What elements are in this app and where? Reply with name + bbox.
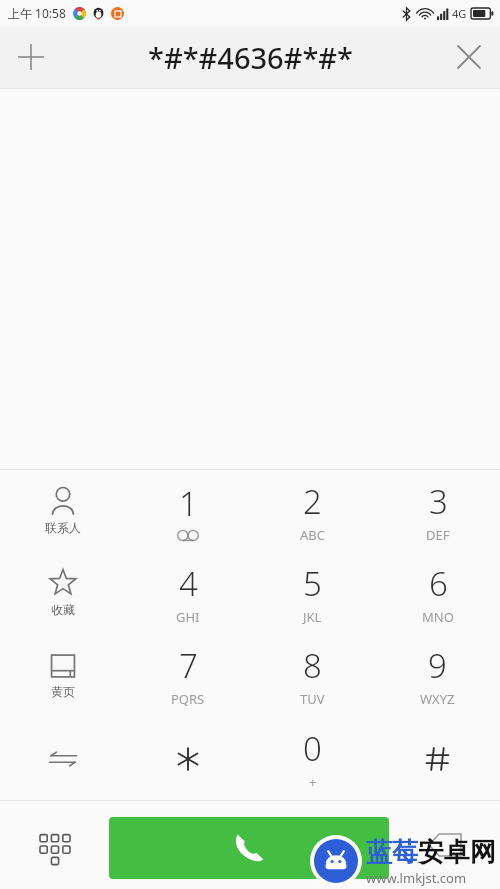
staticText: DEF	[426, 526, 450, 544]
staticText: 1	[179, 481, 198, 526]
staticText: 5	[303, 561, 322, 606]
button[interactable]: Delete	[390, 800, 500, 889]
button[interactable]: Favorites	[0, 552, 125, 634]
staticText: 4	[179, 561, 198, 606]
staticText: JKL	[303, 608, 322, 626]
staticText: 3	[429, 479, 448, 524]
staticText: *#*#4636#*#*	[148, 38, 353, 77]
button[interactable]: Switch	[0, 717, 125, 800]
button[interactable]: Add contact	[0, 26, 62, 88]
staticText: 联系人	[45, 520, 81, 535]
staticText: www.lmkjst.com	[366, 869, 467, 887]
staticText: 收藏	[51, 602, 75, 617]
staticText: 8	[303, 643, 322, 688]
staticText: 9	[428, 643, 447, 688]
staticText: 安卓网	[418, 836, 496, 869]
staticText: 4G	[452, 6, 467, 21]
staticText: PQRS	[171, 690, 205, 708]
button[interactable]: Contacts	[0, 470, 125, 552]
button[interactable]: 4	[125, 552, 250, 634]
button[interactable]: 2	[250, 470, 375, 552]
button[interactable]: Yellow pages	[0, 634, 125, 717]
staticText: ABC	[300, 526, 325, 544]
staticText: 0	[303, 726, 322, 771]
button[interactable]: Star	[125, 717, 250, 800]
button[interactable]: 5	[250, 552, 375, 634]
button[interactable]: 8	[250, 634, 375, 717]
button[interactable]: 9	[375, 634, 500, 717]
staticText: 2	[303, 479, 322, 524]
staticText: 黄页	[51, 684, 75, 699]
staticText: WXYZ	[420, 690, 455, 708]
staticText: TUV	[300, 690, 325, 708]
button[interactable]: Call	[109, 817, 389, 879]
button[interactable]: 7	[125, 634, 250, 717]
staticText: MNO	[422, 608, 454, 626]
button[interactable]: 6	[375, 552, 500, 634]
staticText: 6	[429, 561, 448, 606]
button[interactable]: Dialpad	[0, 800, 110, 889]
staticText: +	[309, 773, 317, 791]
button[interactable]: 1	[125, 470, 250, 552]
staticText: GHI	[176, 608, 200, 626]
button[interactable]: Pound	[375, 717, 500, 800]
staticText: 7	[179, 643, 198, 688]
staticText: 上午 10:58	[8, 5, 66, 21]
button[interactable]: 3	[375, 470, 500, 552]
staticText: 蓝莓	[366, 836, 418, 869]
button[interactable]: Close	[438, 26, 500, 88]
button[interactable]: 0	[250, 717, 375, 800]
